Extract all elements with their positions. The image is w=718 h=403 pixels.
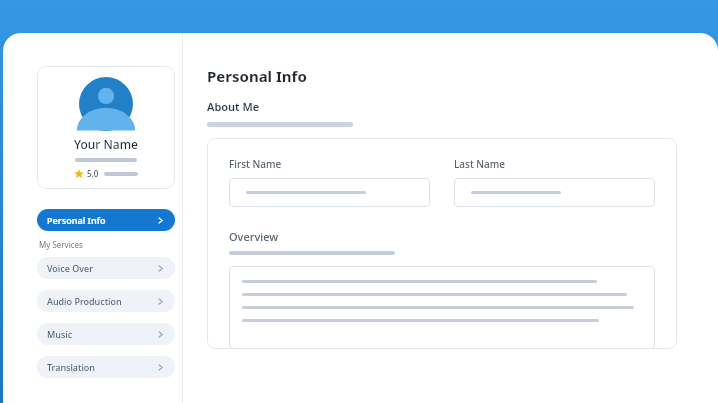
button[interactable]: Audio Production [37,290,175,312]
button[interactable]: Personal Info [37,209,175,231]
button[interactable] [229,266,655,349]
staticText: Audio Production [47,295,122,307]
staticText: Your Name [74,136,138,152]
staticText: Personal Info [207,66,307,86]
staticText: Personal Info [47,214,106,226]
staticText: About Me [207,99,260,114]
button[interactable]: Music [37,323,175,345]
button[interactable] [454,178,655,207]
staticText: Voice Over [47,262,93,274]
staticText: Translation [47,361,95,373]
button[interactable]: Translation [37,356,175,378]
staticText: First Name [229,157,282,171]
staticText: Overview [229,229,279,244]
button[interactable] [229,178,430,207]
staticText: Last Name [454,157,506,171]
staticText: My Services [39,239,83,250]
staticText: Music [47,328,73,340]
button[interactable]: Voice Over [37,257,175,279]
other: Rating star [74,169,84,179]
staticText: 5.0 [87,168,99,179]
